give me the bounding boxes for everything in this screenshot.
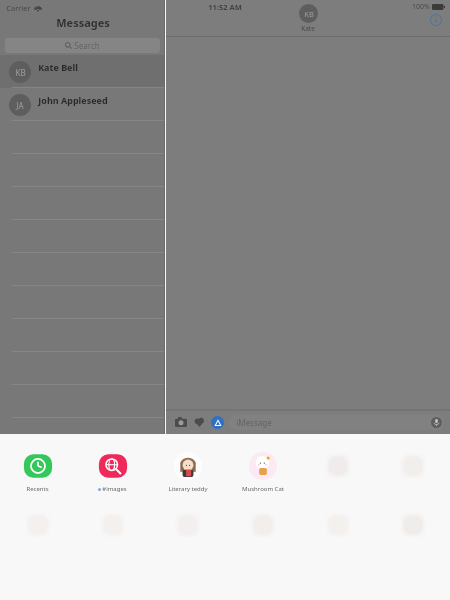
staticText: Search: [74, 40, 100, 51]
button[interactable]: App: [375, 450, 450, 485]
button[interactable]: Recents: [0, 450, 75, 493]
button[interactable]: App: [150, 509, 225, 544]
staticText: Literary teddy: [168, 485, 208, 493]
button[interactable]: Kate contact: [299, 4, 318, 23]
button[interactable]: App: [0, 509, 75, 544]
button[interactable]: Search: [5, 38, 160, 53]
button[interactable]: App: [225, 509, 300, 544]
staticText: 100%: [412, 2, 430, 12]
other: Dictate: [431, 417, 442, 428]
button[interactable]: App: [300, 509, 375, 544]
button[interactable]: Literary teddy: [150, 450, 225, 493]
button[interactable]: App: [375, 509, 450, 544]
staticText: Kate Bell: [38, 61, 78, 73]
button[interactable]: App Store: [211, 416, 224, 429]
button[interactable]: Camera: [173, 414, 189, 430]
staticText: KB: [304, 9, 314, 19]
button[interactable]: JA: [0, 88, 165, 121]
staticText: JA: [16, 100, 24, 111]
button[interactable]: Mushroom Cat: [225, 450, 300, 493]
staticText: 11:52 AM: [208, 2, 242, 12]
staticText: Messages: [56, 15, 110, 30]
button[interactable]: Details: [428, 12, 444, 28]
button[interactable]: App: [300, 450, 375, 485]
staticText: Recents: [26, 485, 49, 493]
staticText: Mushroom Cat: [242, 485, 284, 493]
staticText: Kate: [301, 24, 315, 33]
button[interactable]: Digital Touch: [192, 414, 208, 430]
button[interactable]: KB: [0, 55, 165, 88]
button[interactable]: App: [75, 509, 150, 544]
button[interactable]: iMessage: [229, 415, 444, 430]
button[interactable]: #images: [75, 450, 150, 493]
staticText: iMessage: [236, 417, 272, 428]
staticText: #images: [102, 485, 127, 493]
staticText: Carrier: [6, 3, 31, 13]
staticText: KB: [15, 67, 26, 78]
staticText: John Appleseed: [38, 94, 108, 106]
